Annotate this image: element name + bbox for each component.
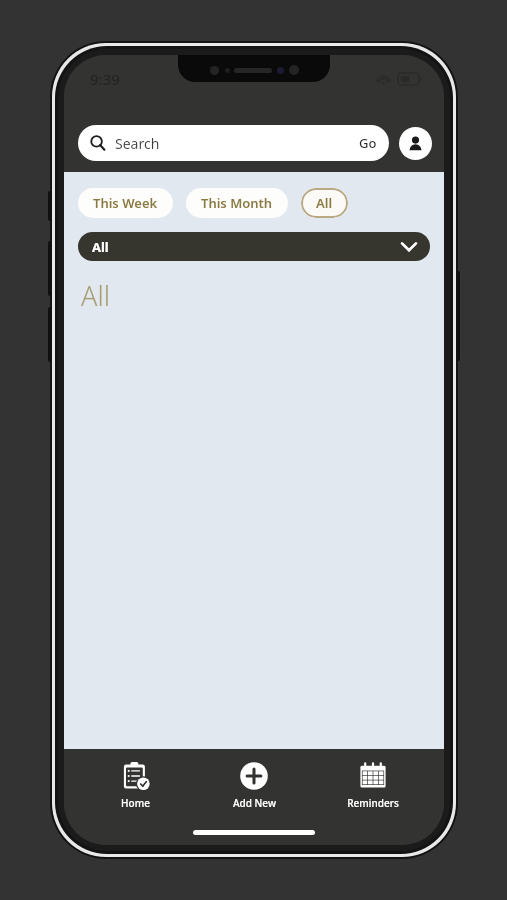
staticText: 9:39 <box>90 69 120 89</box>
staticText: All <box>316 194 333 212</box>
button[interactable]: All <box>78 232 430 261</box>
button[interactable]: Search <box>78 125 389 161</box>
other: Reminders <box>358 761 388 791</box>
button[interactable]: Home <box>87 757 183 814</box>
staticText: Add New <box>233 796 276 810</box>
staticText: This Month <box>201 194 273 212</box>
button[interactable]: Reminders <box>325 757 421 814</box>
button[interactable]: Profile <box>399 127 432 160</box>
staticText: Home <box>121 796 150 810</box>
staticText: All <box>81 277 110 314</box>
other: Home <box>120 761 150 791</box>
staticText: Reminders <box>347 796 399 810</box>
button[interactable]: This Week <box>78 188 173 218</box>
button[interactable]: Add New <box>206 757 302 814</box>
button[interactable]: All <box>301 188 348 218</box>
other: Add New <box>239 761 269 791</box>
staticText: Search <box>115 134 160 153</box>
staticText: Go <box>359 134 377 152</box>
staticText: All <box>92 238 109 256</box>
button[interactable]: This Month <box>186 188 288 218</box>
staticText: This Week <box>93 194 158 212</box>
